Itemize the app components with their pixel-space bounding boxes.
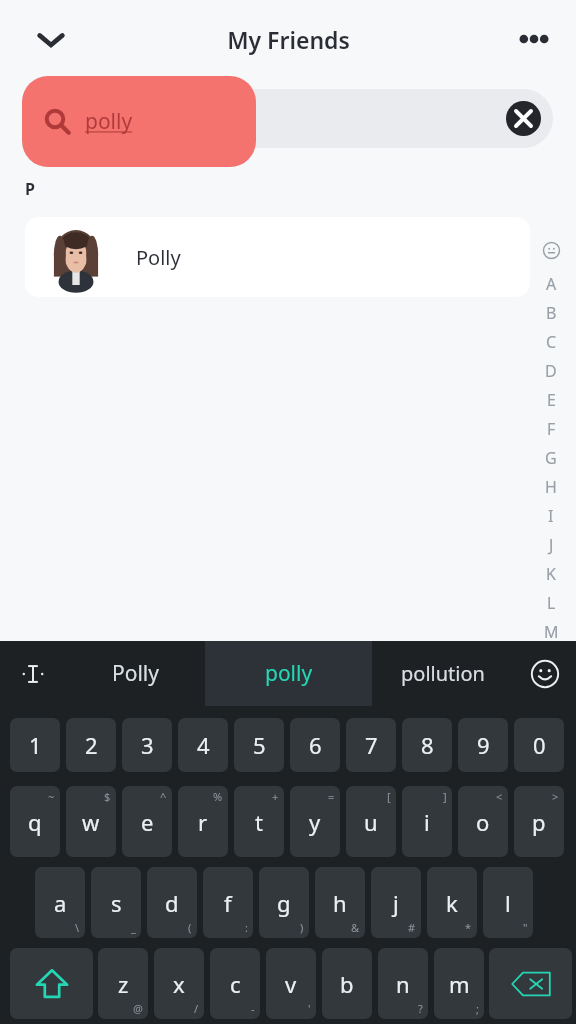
button[interactable]: t (234, 786, 284, 857)
button[interactable]: b (322, 948, 372, 1019)
staticText: 0 (533, 730, 546, 760)
staticText: ' (308, 1001, 311, 1016)
button[interactable]: Collapse (24, 12, 78, 66)
staticText: ^ (160, 789, 167, 804)
button[interactable]: x (154, 948, 204, 1019)
button[interactable]: l (483, 867, 533, 938)
button[interactable]: 9 (458, 718, 508, 772)
staticText: polly (265, 659, 313, 688)
staticText: K (546, 563, 556, 585)
button[interactable]: Clear search (22, 89, 553, 148)
staticText: i (424, 807, 430, 837)
button[interactable]: m (434, 948, 484, 1019)
button[interactable]: 6 (290, 718, 340, 772)
button[interactable]: F (536, 414, 566, 443)
button[interactable]: Polly (25, 217, 530, 297)
button[interactable]: n (378, 948, 428, 1019)
staticText: j (393, 888, 399, 918)
button[interactable]: D (536, 356, 566, 385)
button[interactable]: I (536, 501, 566, 530)
button[interactable]: polly (22, 76, 256, 167)
button[interactable]: Backspace (489, 948, 572, 1019)
button[interactable]: z (98, 948, 148, 1019)
button[interactable]: 8 (402, 718, 452, 772)
staticText: H (545, 476, 557, 498)
button[interactable]: k (427, 867, 477, 938)
staticText: L (547, 592, 556, 614)
staticText: $ (104, 789, 111, 804)
staticText: + (272, 789, 279, 804)
button[interactable]: Polly (66, 641, 205, 706)
button[interactable]: h (315, 867, 365, 938)
button[interactable]: 7 (346, 718, 396, 772)
staticText: q (28, 807, 42, 837)
button[interactable]: 0 (514, 718, 564, 772)
button[interactable]: L (536, 588, 566, 617)
staticText: > (552, 789, 559, 804)
button[interactable]: u (346, 786, 396, 857)
staticText: G (545, 447, 557, 469)
staticText: 7 (365, 730, 378, 760)
button[interactable]: K (536, 559, 566, 588)
staticText: @ (133, 1001, 143, 1016)
button[interactable]: p (514, 786, 564, 857)
button[interactable]: 4 (178, 718, 228, 772)
button[interactable]: pollution (372, 641, 514, 706)
staticText: = (328, 789, 335, 804)
staticText: w (82, 807, 100, 837)
button[interactable]: v (266, 948, 316, 1019)
staticText: \ (75, 920, 80, 935)
button[interactable]: Emoji section (539, 238, 563, 262)
button[interactable]: E (536, 385, 566, 414)
staticText: 9 (477, 730, 490, 760)
staticText: f (224, 888, 232, 918)
button[interactable]: Clear search (506, 101, 541, 136)
staticText: n (396, 969, 410, 999)
button[interactable]: o (458, 786, 508, 857)
button[interactable]: q (10, 786, 60, 857)
button[interactable]: H (536, 472, 566, 501)
button[interactable]: j (371, 867, 421, 938)
button[interactable]: g (259, 867, 309, 938)
button[interactable]: i (402, 786, 452, 857)
staticText: pollution (401, 660, 485, 687)
staticText: E (547, 389, 556, 411)
staticText: ] (443, 789, 447, 804)
staticText: 5 (253, 730, 266, 760)
button[interactable]: M (536, 617, 566, 646)
staticText: B (546, 302, 557, 324)
button[interactable]: 3 (122, 718, 172, 772)
button[interactable]: y (290, 786, 340, 857)
staticText: a (54, 888, 67, 918)
button[interactable]: Text cursor tools (0, 641, 66, 706)
staticText: l (505, 888, 511, 918)
staticText: x (173, 969, 185, 999)
button[interactable]: s (91, 867, 141, 938)
button[interactable]: polly (205, 641, 372, 706)
staticText: polly (85, 107, 133, 136)
button[interactable]: r (178, 786, 228, 857)
button[interactable]: J (536, 530, 566, 559)
button[interactable]: B (536, 298, 566, 327)
button[interactable]: f (203, 867, 253, 938)
button[interactable]: w (66, 786, 116, 857)
button[interactable]: a (35, 867, 85, 938)
button[interactable]: 5 (234, 718, 284, 772)
button[interactable]: Emoji keyboard (514, 641, 576, 706)
staticText: % (213, 789, 223, 804)
staticText: u (364, 807, 378, 837)
staticText: # (408, 920, 416, 935)
button[interactable]: C (536, 327, 566, 356)
button[interactable]: c (210, 948, 260, 1019)
staticText: z (118, 969, 129, 999)
button[interactable]: A (536, 269, 566, 298)
button[interactable]: 2 (66, 718, 116, 772)
button[interactable]: More options (506, 11, 562, 67)
button[interactable]: G (536, 443, 566, 472)
button[interactable]: Shift (10, 948, 93, 1019)
button[interactable]: e (122, 786, 172, 857)
staticText: - (251, 1001, 255, 1016)
button[interactable]: 1 (10, 718, 60, 772)
staticText: o (476, 807, 490, 837)
button[interactable]: d (147, 867, 197, 938)
